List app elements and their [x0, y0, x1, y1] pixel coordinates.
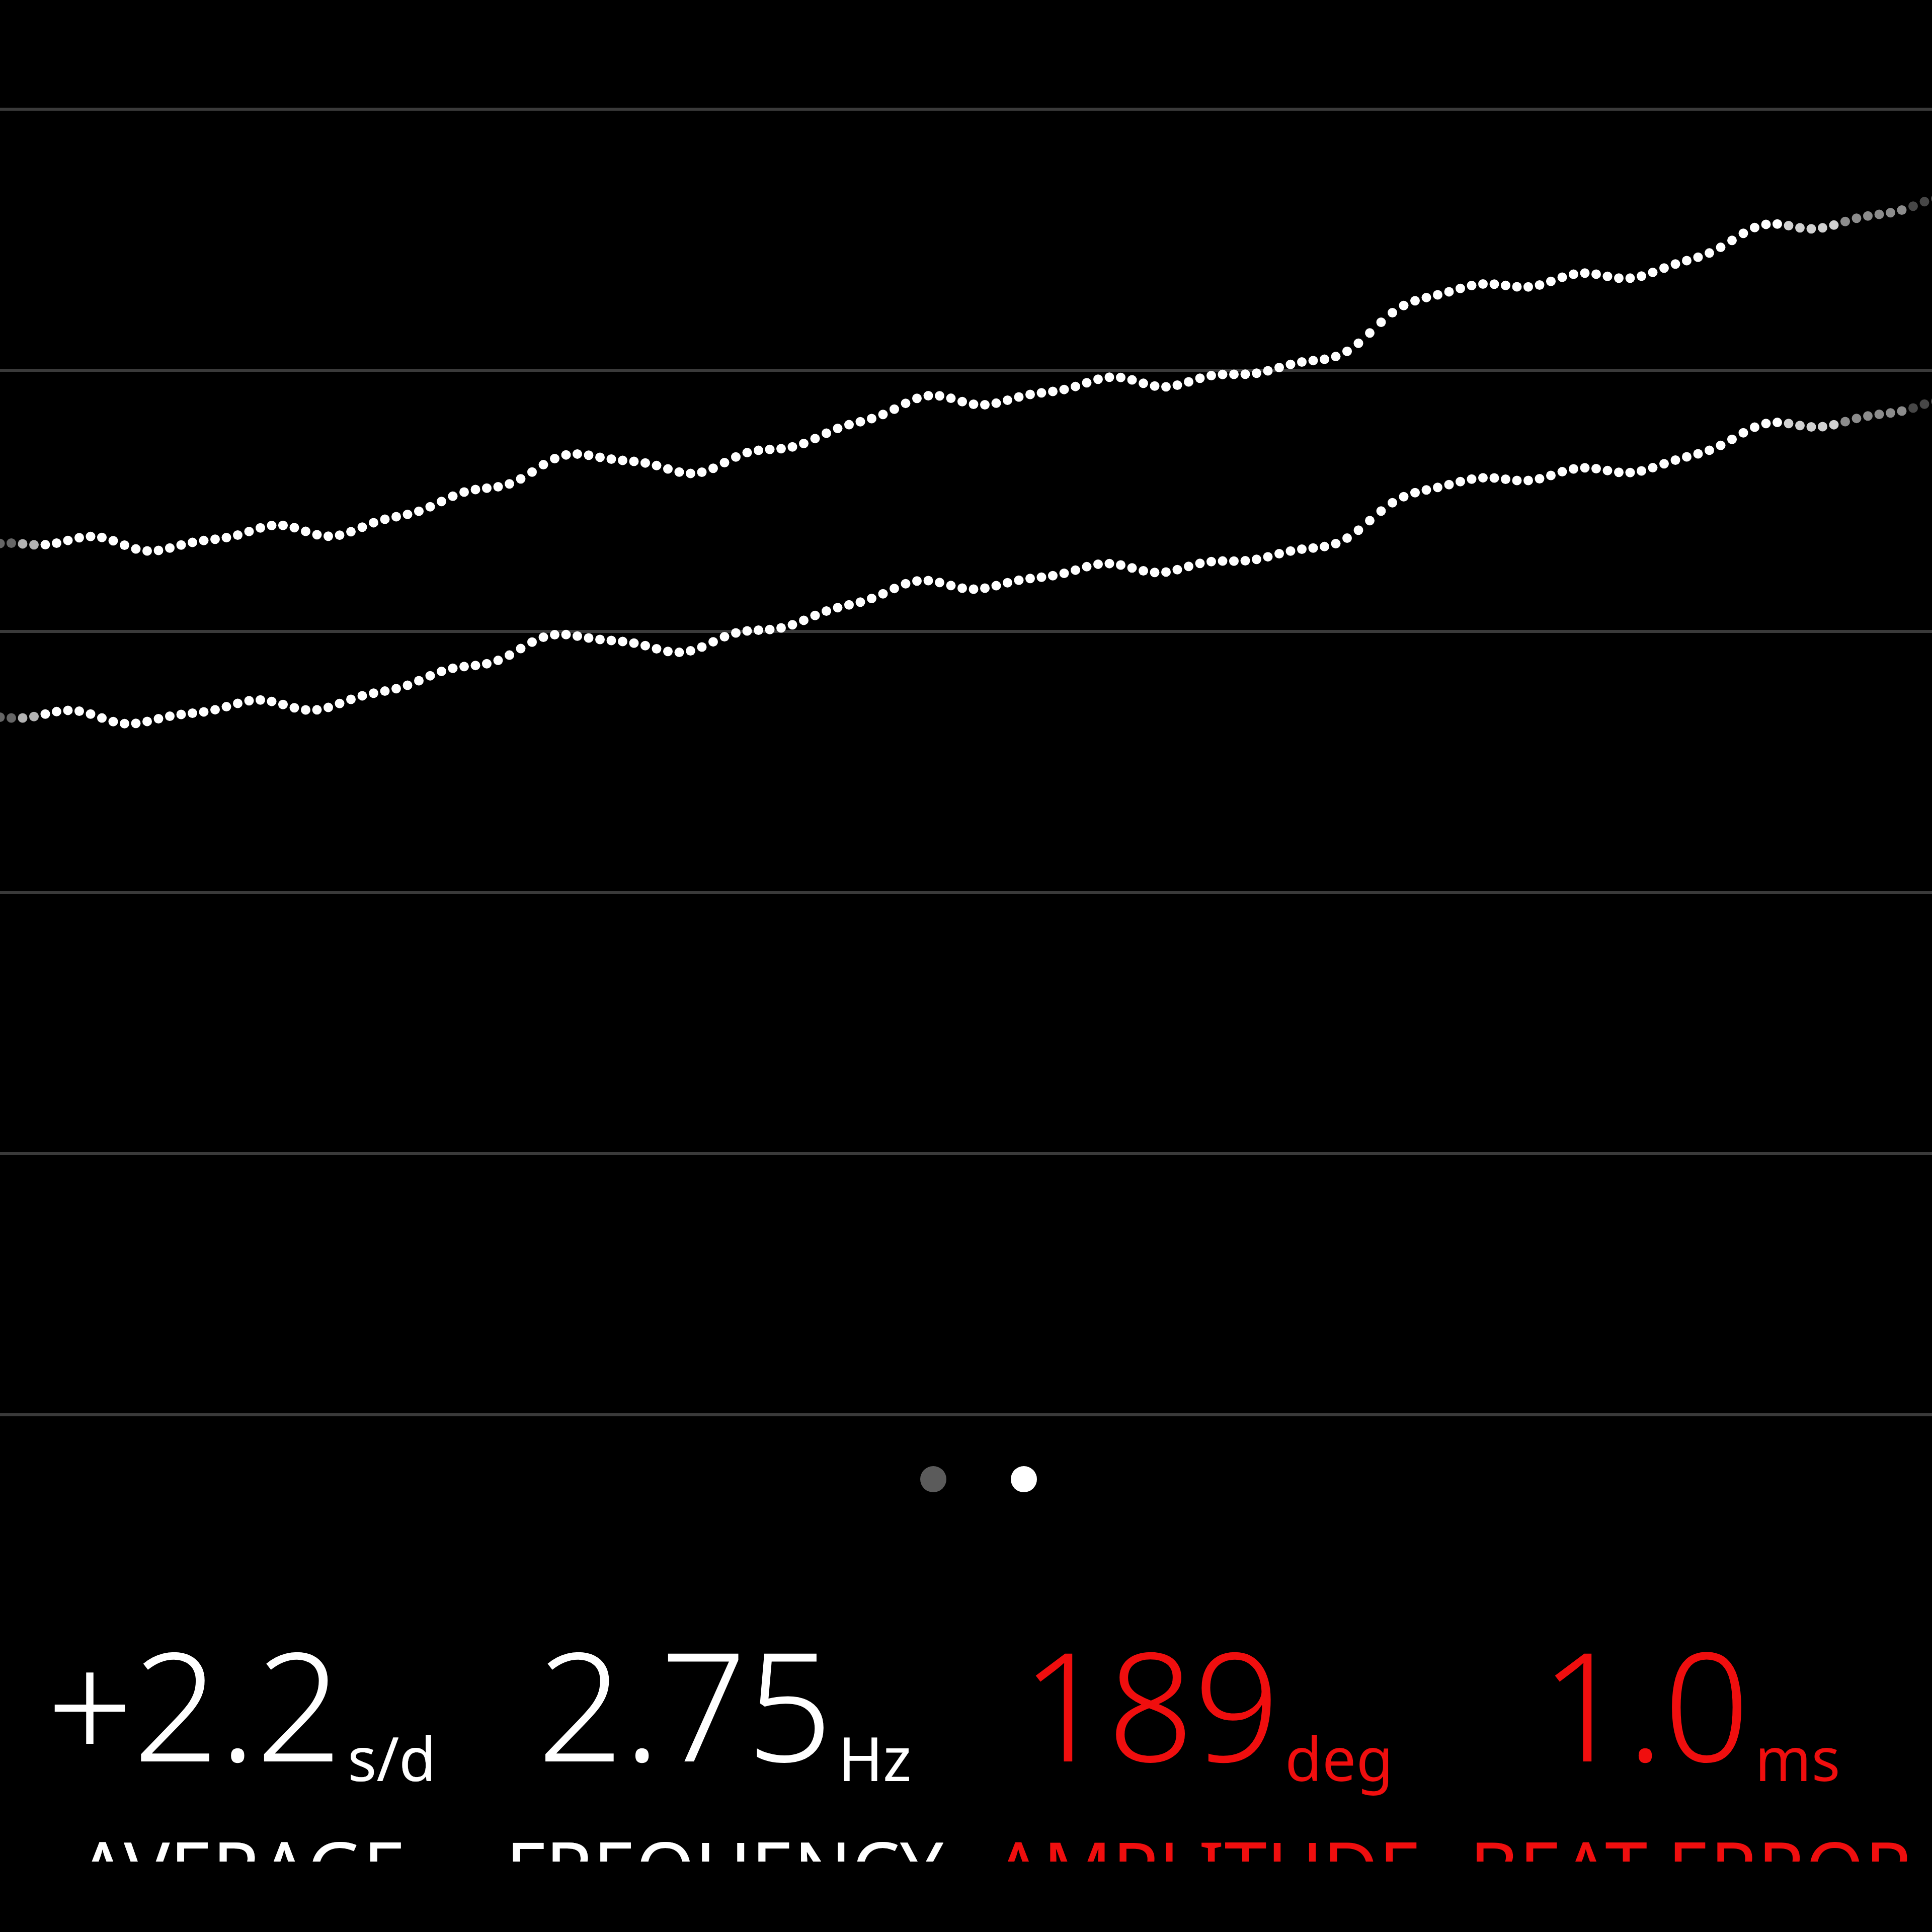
button[interactable]: 1.0 — [1449, 1600, 1932, 1862]
button[interactable]: 189 — [966, 1600, 1449, 1862]
button[interactable]: Page 1 — [920, 1466, 946, 1492]
button[interactable]: Beat trace graph — [0, 0, 1932, 1932]
staticText: ms — [1755, 1717, 1840, 1799]
staticText: AVERAGE — [78, 1816, 406, 1862]
staticText: AMPLITUDE — [994, 1816, 1421, 1862]
staticText: 1.0 — [1541, 1600, 1750, 1806]
staticText: 189 — [1021, 1600, 1280, 1806]
button[interactable]: Page 2 — [1011, 1466, 1037, 1492]
staticText: 2.75 — [537, 1600, 833, 1806]
button[interactable]: +2.2 — [0, 1600, 483, 1862]
staticText: s/d — [348, 1717, 436, 1799]
staticText: Hz — [838, 1717, 912, 1799]
staticText: deg — [1285, 1717, 1394, 1799]
staticText: FREQUENCY — [506, 1816, 943, 1862]
staticText: BEAT ERROR — [1469, 1816, 1912, 1862]
staticText: +2.2 — [47, 1600, 343, 1806]
button[interactable]: 2.75 — [483, 1600, 966, 1862]
